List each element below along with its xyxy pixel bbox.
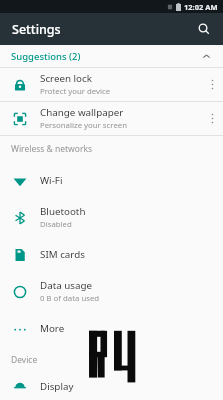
- button[interactable]: Suggestions (2): [0, 45, 223, 67]
- staticText: 12:02 AM: [184, 2, 218, 12]
- button[interactable]: More: [0, 310, 223, 347]
- button[interactable]: More options: [201, 68, 223, 101]
- staticText: More: [40, 322, 65, 335]
- staticText: 0 B of data used: [40, 293, 100, 304]
- staticText: Change wallpaper: [40, 106, 124, 119]
- staticText: Wi-Fi: [40, 174, 63, 187]
- button[interactable]: Screen lock: [0, 68, 223, 101]
- button[interactable]: SIM cards: [0, 236, 223, 273]
- staticText: Suggestions (2): [11, 50, 81, 63]
- staticText: Screen lock: [40, 72, 92, 85]
- staticText: Display: [40, 380, 74, 393]
- button[interactable]: Search: [191, 16, 217, 42]
- button[interactable]: Wi-Fi: [0, 162, 223, 199]
- staticText: Device: [11, 354, 38, 366]
- staticText: Data usage: [40, 279, 93, 292]
- staticText: Bluetooth: [40, 205, 86, 218]
- staticText: Settings: [12, 21, 61, 38]
- button[interactable]: Change wallpaper: [0, 102, 223, 135]
- staticText: Wireless & networks: [11, 143, 93, 155]
- staticText: Personalize your screen: [40, 120, 128, 131]
- staticText: Protect your device: [40, 86, 111, 97]
- staticText: Disabled: [40, 219, 72, 230]
- staticText: SIM cards: [40, 248, 85, 261]
- button[interactable]: Data usage: [0, 273, 223, 310]
- button[interactable]: Bluetooth: [0, 199, 223, 236]
- button[interactable]: Display: [0, 373, 223, 400]
- button[interactable]: More options: [201, 102, 223, 135]
